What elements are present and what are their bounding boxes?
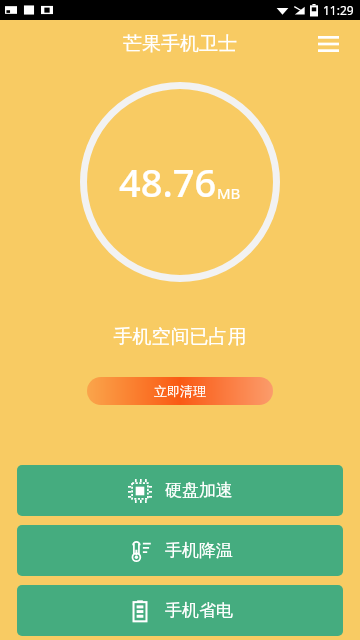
staticText: 硬盘加速 [165, 480, 233, 501]
button[interactable]: 手机省电 [17, 585, 343, 636]
staticText: 手机空间已占用 [0, 325, 360, 349]
staticText: 立即清理 [154, 383, 206, 399]
staticText: MB [217, 183, 241, 203]
button[interactable]: 硬盘加速 [17, 465, 343, 516]
staticText: 芒果手机卫士 [123, 32, 237, 56]
staticText: 11:29 [323, 2, 354, 18]
button[interactable]: Menu [306, 22, 350, 66]
button[interactable]: 手机降温 [17, 525, 343, 576]
staticText: 手机降温 [165, 540, 233, 561]
staticText: 48.76 [119, 156, 217, 208]
button[interactable]: 立即清理 [87, 377, 273, 405]
staticText: 手机省电 [165, 600, 233, 621]
